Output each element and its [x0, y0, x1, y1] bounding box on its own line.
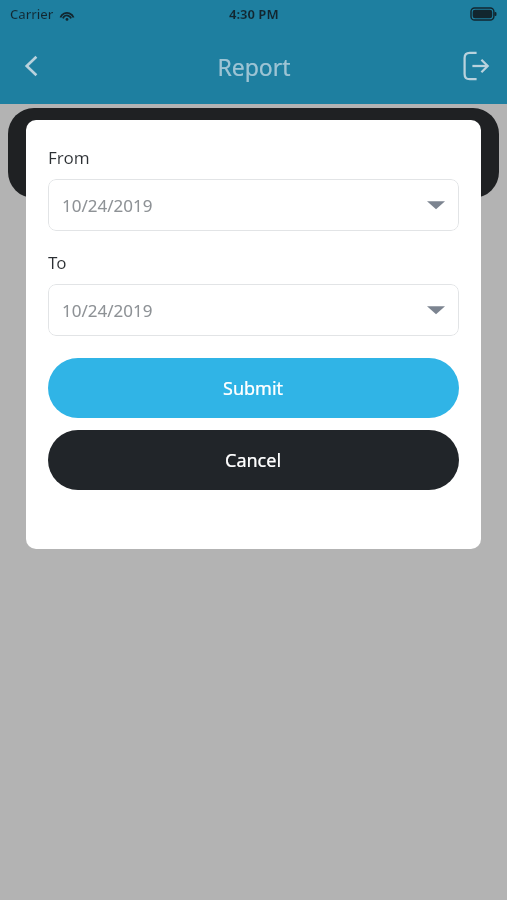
staticText: Report: [217, 51, 291, 82]
staticText: 4:30 PM: [229, 5, 279, 23]
staticText: From: [48, 146, 90, 169]
button[interactable]: 10/24/2019: [48, 284, 459, 336]
button[interactable]: 10/24/2019: [48, 179, 459, 231]
staticText: 10/24/2019: [62, 194, 153, 217]
staticText: 10/24/2019: [62, 299, 153, 322]
staticText: To: [48, 251, 67, 274]
button[interactable]: Back: [8, 42, 56, 90]
button[interactable]: Log out: [449, 42, 497, 90]
button[interactable]: Submit: [48, 358, 459, 418]
staticText: Submit: [223, 376, 284, 401]
staticText: Cancel: [225, 448, 282, 473]
staticText: Carrier: [10, 5, 54, 23]
button[interactable]: Cancel: [48, 430, 459, 490]
